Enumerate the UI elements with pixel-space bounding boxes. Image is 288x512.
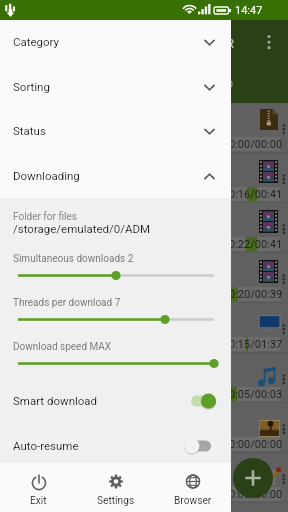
button[interactable]: Item menu <box>0 303 288 353</box>
button[interactable]: Item menu <box>0 103 288 153</box>
button[interactable]: Download speed MAX <box>0 334 231 378</box>
button[interactable]: Browser <box>154 463 231 512</box>
staticText: Sorting <box>13 80 50 93</box>
button[interactable]: More options <box>265 34 273 50</box>
button[interactable]: Item menu <box>281 224 287 235</box>
button[interactable]: Status <box>0 109 231 154</box>
staticText: 14:47 <box>235 4 263 17</box>
button[interactable]: Add download <box>233 458 273 498</box>
staticText: 0:22/00:41 <box>229 238 283 251</box>
staticText: Smart download <box>13 394 98 407</box>
staticText: Folder for files <box>13 211 77 223</box>
staticText: D <box>226 78 234 91</box>
button[interactable]: Item menu <box>281 274 287 285</box>
staticText: /storage/emulated/0/ADM <box>13 222 151 235</box>
button[interactable]: Exit <box>0 463 77 512</box>
staticText: 0:05/00:03 <box>229 388 283 401</box>
button[interactable]: Item menu <box>281 324 287 335</box>
button[interactable]: Item menu <box>0 353 288 403</box>
button[interactable]: Item menu <box>281 424 287 435</box>
button[interactable]: Settings <box>77 463 154 512</box>
staticText: 0:20/00:39 <box>229 288 283 301</box>
staticText: Browser <box>174 495 212 507</box>
button[interactable]: Item menu <box>0 403 288 453</box>
button[interactable]: Smart download <box>0 378 231 423</box>
staticText: Exit <box>30 495 47 507</box>
staticText: Download speed MAX <box>13 341 112 353</box>
button[interactable]: Item menu <box>281 124 287 135</box>
staticText: Auto-resume <box>13 439 79 452</box>
button[interactable]: Item menu <box>281 174 287 185</box>
button[interactable]: Auto-resume <box>0 423 231 468</box>
staticText: 0:15/01:37 <box>229 338 283 351</box>
staticText: 0:16/00:41 <box>229 188 283 201</box>
staticText: Category <box>13 35 60 48</box>
staticText: 0:00/00:00 <box>229 438 283 451</box>
button[interactable]: Item menu <box>281 474 287 485</box>
staticText: 0:00/00:00 <box>229 488 283 501</box>
staticText: 0:00/00:00 <box>229 138 283 151</box>
staticText: Threads per download 7 <box>13 297 121 309</box>
button[interactable]: Sorting <box>0 65 231 110</box>
staticText: Status <box>13 124 46 137</box>
button[interactable]: Item menu <box>0 203 288 253</box>
staticText: Simultaneous downloads 2 <box>13 253 134 265</box>
staticText: Downloading <box>13 169 80 182</box>
button[interactable]: Category <box>0 20 231 65</box>
staticText: R <box>226 36 235 51</box>
button[interactable]: Simultaneous downloads 2 <box>0 246 231 290</box>
button[interactable]: Threads per download 7 <box>0 290 231 334</box>
button[interactable]: Folder for files <box>0 198 231 246</box>
button[interactable]: Downloading <box>0 154 231 199</box>
button[interactable]: Item menu <box>0 253 288 303</box>
button[interactable]: Item menu <box>281 374 287 385</box>
button[interactable]: Item menu <box>0 453 288 503</box>
staticText: Settings <box>97 495 135 507</box>
button[interactable]: Item menu <box>0 153 288 203</box>
